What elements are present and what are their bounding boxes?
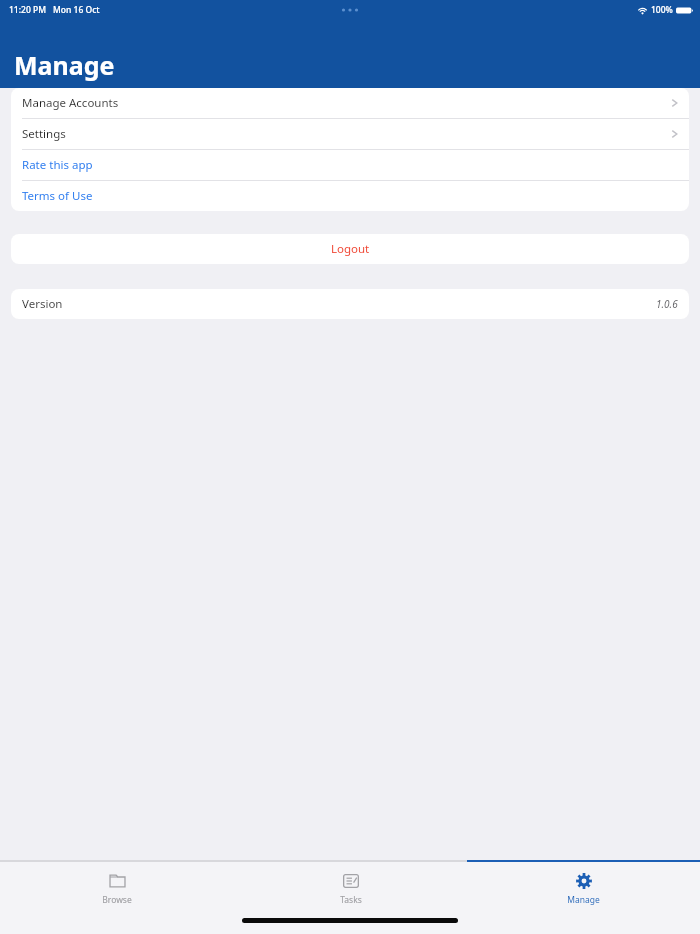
- staticText: Rate this app: [22, 157, 93, 173]
- button[interactable]: Logout: [11, 234, 689, 264]
- staticText: 11:20 PM: [9, 4, 46, 16]
- button[interactable]: Manage: [467, 862, 700, 914]
- button[interactable]: Browse: [0, 862, 234, 914]
- staticText: Version: [22, 296, 63, 312]
- button[interactable]: Tasks: [234, 862, 467, 914]
- staticText: Logout: [331, 241, 370, 257]
- staticText: Tasks: [340, 894, 362, 906]
- staticText: 1.0.6: [656, 297, 678, 311]
- staticText: Settings: [22, 126, 66, 142]
- staticText: Manage: [567, 894, 600, 906]
- staticText: Manage Accounts: [22, 95, 119, 111]
- button[interactable]: Rate this app: [11, 150, 689, 180]
- staticText: Manage: [14, 48, 115, 82]
- button[interactable]: Terms of Use: [11, 181, 689, 211]
- button[interactable]: Settings: [11, 119, 689, 149]
- staticText: Browse: [102, 894, 132, 906]
- staticText: 100%: [651, 4, 673, 16]
- staticText: Terms of Use: [22, 188, 93, 204]
- staticText: Mon 16 Oct: [53, 4, 100, 16]
- button[interactable]: Manage Accounts: [11, 88, 689, 118]
